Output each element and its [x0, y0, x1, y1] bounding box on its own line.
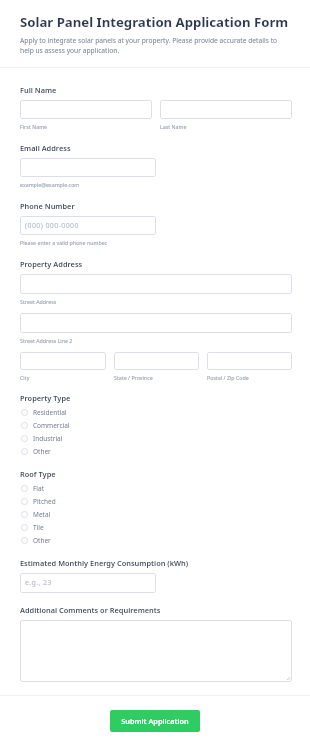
button[interactable]: Other — [20, 445, 292, 458]
staticText: Additional Comments or Requirements — [20, 605, 161, 615]
button[interactable]: e.g., 23 — [20, 573, 156, 593]
staticText: Submit Application — [121, 716, 189, 726]
staticText: Flat — [33, 484, 45, 493]
button[interactable] — [207, 352, 292, 370]
button[interactable]: Residential — [20, 406, 292, 419]
button[interactable] — [114, 352, 199, 370]
staticText: Metal — [33, 510, 51, 519]
staticText: Property Type — [20, 393, 71, 403]
staticText: Solar Panel Integration Application Form — [20, 13, 289, 31]
staticText: Pitched — [33, 497, 56, 506]
staticText: Other — [33, 536, 51, 545]
staticText: Last Name — [160, 123, 187, 130]
staticText: State / Province — [114, 374, 153, 381]
button[interactable]: Pitched — [20, 495, 292, 508]
staticText: Estimated Monthly Energy Consumption (kW… — [20, 558, 189, 568]
button[interactable]: Tile — [20, 521, 292, 534]
staticText: Roof Type — [20, 469, 56, 479]
staticText: Apply to integrate solar panels at your … — [20, 36, 292, 55]
button[interactable]: (000) 000-0000 — [20, 216, 156, 235]
staticText: Please enter a valid phone number. — [20, 239, 108, 246]
button[interactable]: Flat — [20, 482, 292, 495]
staticText: Phone Number — [20, 201, 75, 211]
button[interactable] — [20, 100, 152, 119]
button[interactable] — [20, 158, 156, 177]
staticText: Other — [33, 447, 51, 456]
staticText: City — [20, 374, 30, 381]
staticText: Email Address — [20, 143, 71, 153]
staticText: Property Address — [20, 259, 83, 269]
button[interactable] — [20, 620, 292, 682]
button[interactable] — [20, 313, 292, 333]
button[interactable]: Other — [20, 534, 292, 547]
button[interactable] — [160, 100, 292, 119]
staticText: Street Address Line 2 — [20, 337, 73, 344]
button[interactable] — [20, 274, 292, 294]
staticText: e.g., 23 — [25, 578, 52, 588]
button[interactable]: Industrial — [20, 432, 292, 445]
staticText: Street Address — [20, 298, 57, 305]
button[interactable]: Submit Application — [110, 710, 200, 732]
staticText: Commercial — [33, 421, 70, 430]
button[interactable]: Metal — [20, 508, 292, 521]
staticText: Industrial — [33, 434, 63, 443]
staticText: Residential — [33, 408, 67, 417]
button[interactable]: Commercial — [20, 419, 292, 432]
staticText: Postal / Zip Code — [207, 374, 249, 381]
staticText: Full Name — [20, 85, 57, 95]
staticText: Tile — [33, 523, 44, 532]
staticText: First Name — [20, 123, 48, 130]
staticText: example@example.com — [20, 181, 80, 188]
button[interactable] — [20, 352, 106, 370]
staticText: (000) 000-0000 — [25, 221, 79, 231]
